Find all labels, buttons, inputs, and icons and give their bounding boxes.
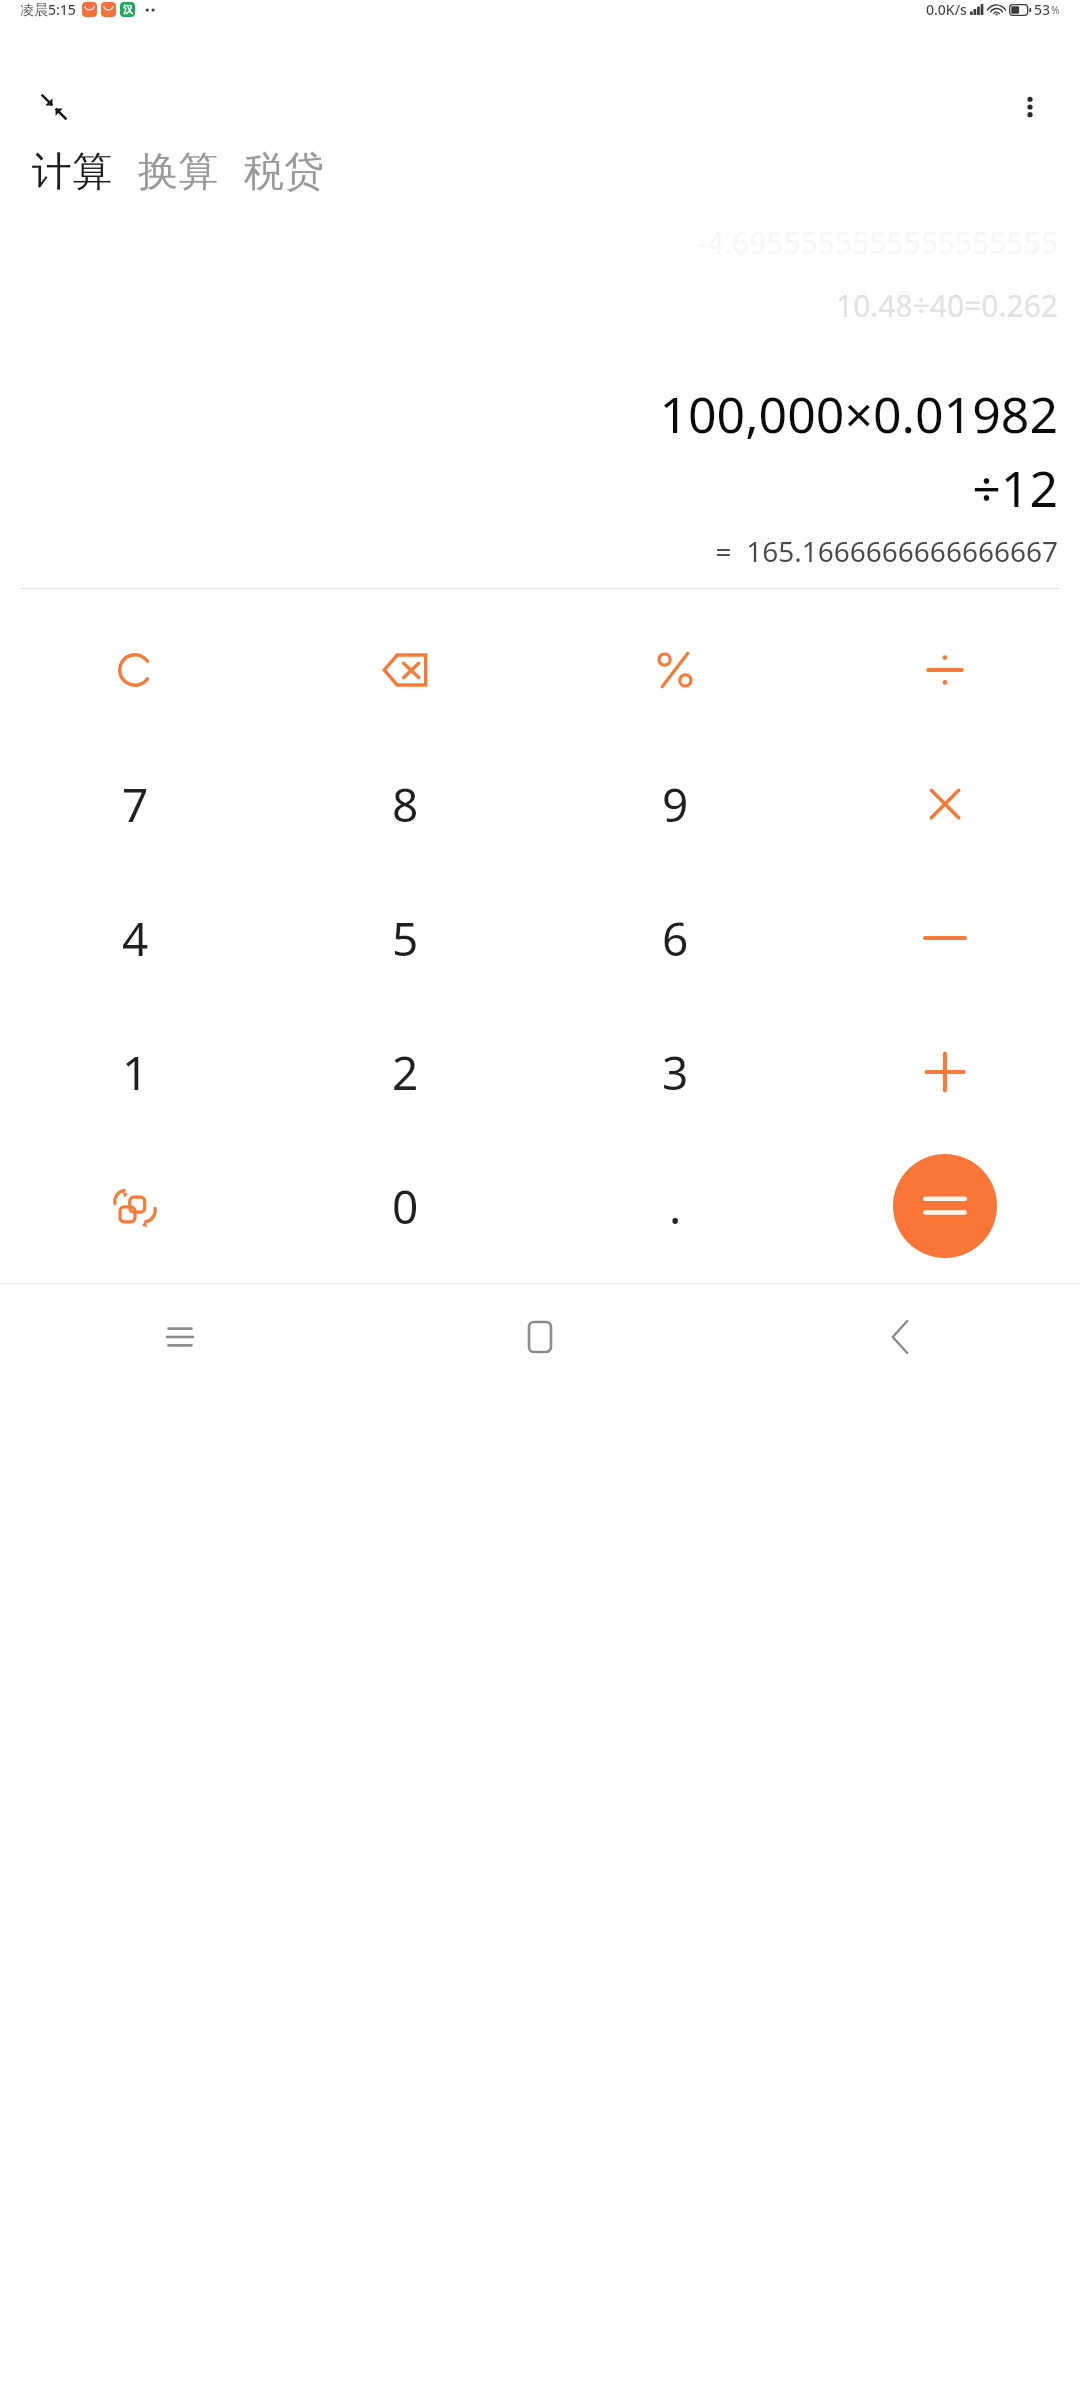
staticText: 0.0K/s	[926, 0, 967, 19]
button[interactable]: Unit convert	[0, 1139, 270, 1273]
button[interactable]: 1	[0, 1005, 270, 1139]
button[interactable]: Equals	[893, 1154, 997, 1258]
button[interactable]: 9	[540, 737, 810, 871]
button[interactable]: Minus	[810, 871, 1080, 1005]
staticText: 0	[392, 1175, 419, 1238]
button[interactable]: .	[540, 1139, 810, 1273]
staticText: 100,000×0.01982	[22, 380, 1058, 448]
button[interactable]: 5	[270, 871, 540, 1005]
button[interactable]: Recents	[0, 1284, 360, 1390]
button[interactable]: 计算	[30, 142, 114, 200]
button[interactable]: 3	[540, 1005, 810, 1139]
button[interactable]: More options	[1002, 79, 1058, 135]
button[interactable]: Home	[360, 1284, 720, 1390]
staticText: 3	[662, 1041, 689, 1104]
staticText: 10.48÷40=0.262	[22, 285, 1058, 326]
button[interactable]: 8	[270, 737, 540, 871]
staticText: 5	[392, 907, 419, 970]
staticText: 计算	[32, 146, 112, 196]
staticText: 53	[1034, 0, 1051, 19]
staticText: 7	[122, 773, 149, 836]
staticText: 汉	[123, 3, 133, 16]
button[interactable]: 7	[0, 737, 270, 871]
button[interactable]: 换算	[136, 142, 220, 200]
staticText: = 165.1666666666666667	[22, 532, 1058, 570]
staticText: ÷12	[22, 454, 1058, 522]
staticText: 1	[122, 1041, 149, 1104]
button[interactable]: Plus	[810, 1005, 1080, 1139]
staticText: 9	[662, 773, 689, 836]
button[interactable]: Percent	[540, 603, 810, 737]
button[interactable]: Clear	[0, 603, 270, 737]
staticText: 4	[122, 907, 149, 970]
button[interactable]: 0	[270, 1139, 540, 1273]
staticText: .	[669, 1175, 682, 1238]
staticText: %	[1051, 3, 1060, 17]
button[interactable]: Multiply	[810, 737, 1080, 871]
staticText: 凌晨5:15	[20, 0, 76, 19]
staticText: 税贷	[244, 146, 324, 196]
button[interactable]: Collapse	[28, 81, 80, 133]
button[interactable]: Backspace	[270, 603, 540, 737]
staticText: 6	[662, 907, 689, 970]
button[interactable]: 税贷	[242, 142, 326, 200]
button[interactable]: 4	[0, 871, 270, 1005]
button[interactable]: Back	[720, 1284, 1080, 1390]
staticText: 换算	[138, 146, 218, 196]
staticText: 8	[392, 773, 419, 836]
button[interactable]: 2	[270, 1005, 540, 1139]
button[interactable]: 6	[540, 871, 810, 1005]
staticText: 2	[392, 1041, 419, 1104]
button[interactable]: Divide	[810, 603, 1080, 737]
